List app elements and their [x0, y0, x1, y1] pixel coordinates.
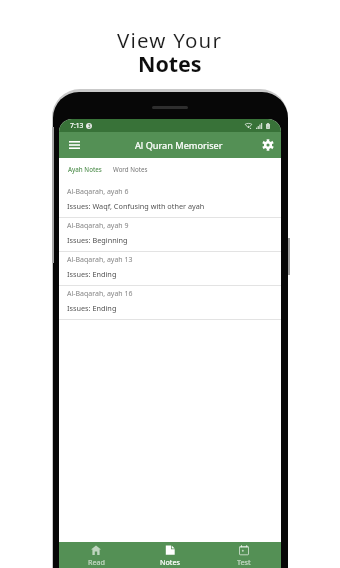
button[interactable]: Word Notes: [112, 162, 149, 176]
staticText: Notes: [160, 557, 180, 567]
button[interactable]: Notes: [133, 542, 207, 568]
button[interactable]: Settings: [259, 136, 277, 154]
button[interactable]: Read: [59, 542, 133, 568]
staticText: Notes: [138, 49, 202, 78]
staticText: Word Notes: [113, 165, 148, 173]
staticText: Test: [237, 557, 251, 567]
staticText: Al Quran Memoriser: [135, 139, 223, 152]
button[interactable]: Al-Baqarah, ayah 13: [59, 252, 281, 285]
staticText: Issues: Waqf, Confusing with other ayah: [67, 201, 205, 211]
button[interactable]: Menu: [65, 136, 83, 154]
staticText: View Your: [117, 26, 223, 54]
button[interactable]: Al-Baqarah, ayah 16: [59, 286, 281, 319]
button[interactable]: Al-Baqarah, ayah 9: [59, 218, 281, 251]
staticText: Al-Baqarah, ayah 16: [67, 289, 133, 299]
staticText: Ayah Notes: [68, 165, 102, 173]
staticText: 3: [88, 123, 91, 129]
staticText: Issues: Ending: [67, 303, 117, 313]
staticText: Issues: Beginning: [67, 235, 128, 245]
staticText: Read: [88, 557, 105, 567]
staticText: Al-Baqarah, ayah 9: [67, 221, 129, 231]
staticText: Al-Baqarah, ayah 13: [67, 255, 133, 265]
button[interactable]: Ayah Notes: [67, 162, 103, 176]
staticText: Al-Baqarah, ayah 6: [67, 187, 129, 197]
staticText: 7:13: [70, 121, 84, 130]
staticText: Issues: Ending: [67, 269, 117, 279]
button[interactable]: Al-Baqarah, ayah 6: [59, 184, 281, 217]
button[interactable]: Test: [207, 542, 281, 568]
